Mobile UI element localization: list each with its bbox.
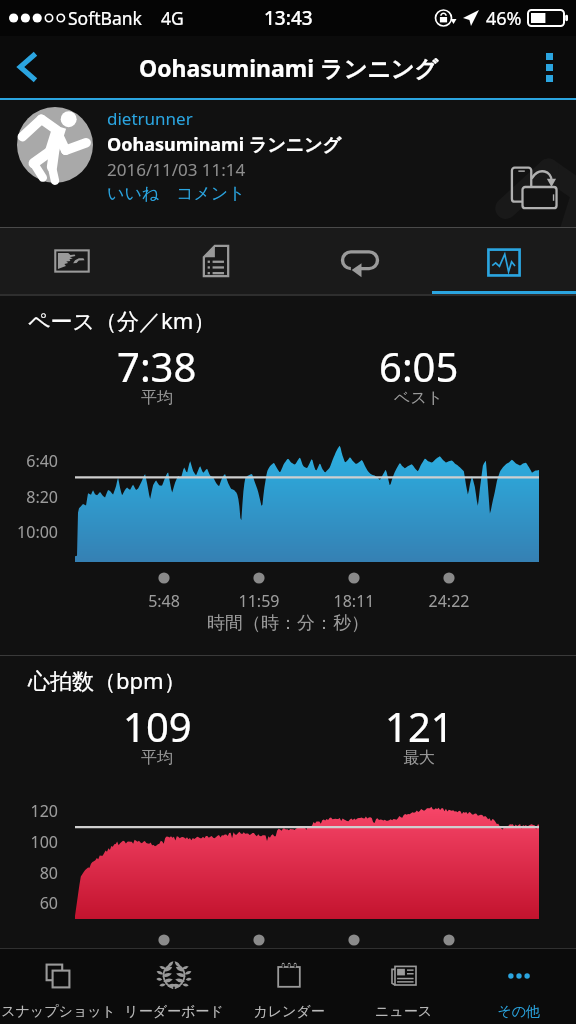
staticText: Oohasuminami ランニング	[139, 52, 438, 83]
staticText: 18:11	[314, 590, 394, 612]
staticText: 平均	[141, 748, 173, 768]
staticText: 平均	[141, 388, 173, 408]
staticText: ベスト	[394, 388, 444, 408]
button[interactable]: いいね	[107, 183, 160, 204]
staticText: dietrunner	[107, 107, 193, 130]
staticText: 100	[0, 831, 58, 853]
button[interactable]: Details	[144, 228, 288, 294]
staticText: 8:20	[0, 486, 58, 508]
staticText: 4G	[161, 6, 184, 30]
button[interactable]: カレンダー	[231, 949, 346, 1024]
staticText: カレンダー	[253, 1003, 325, 1021]
staticText: その他	[497, 1003, 540, 1021]
staticText: SoftBank	[68, 6, 142, 30]
staticText: 6:40	[0, 450, 58, 472]
staticText: 121	[385, 699, 454, 753]
staticText: 6:05	[379, 339, 459, 393]
button[interactable]: Rotate device	[506, 159, 562, 215]
staticText: 60	[0, 892, 58, 914]
staticText: 13:43	[264, 5, 313, 31]
staticText: 109	[123, 699, 192, 753]
button[interactable]: Map	[0, 228, 144, 294]
staticText: 80	[0, 862, 58, 884]
button[interactable]: ニュース	[346, 949, 461, 1024]
staticText: 時間（時：分：秒）	[0, 612, 576, 635]
button[interactable]: その他	[461, 949, 576, 1024]
button[interactable]: リーダーボード	[116, 949, 231, 1024]
staticText: Oohasuminami ランニング	[107, 132, 341, 157]
button[interactable]: Back	[0, 36, 54, 98]
staticText: スナップショット	[1, 1003, 116, 1021]
button[interactable]: More options	[522, 36, 576, 98]
button[interactable]: コメント	[176, 183, 246, 204]
staticText: ペース（分／km）	[28, 305, 216, 335]
staticText: 24:22	[409, 590, 489, 612]
staticText: ニュース	[375, 1003, 432, 1021]
staticText: 11:59	[219, 590, 299, 612]
staticText: 7:38	[117, 339, 197, 393]
staticText: 46%	[486, 6, 522, 31]
button[interactable]: Laps	[288, 228, 432, 294]
staticText: 心拍数（bpm）	[28, 665, 186, 695]
staticText: リーダーボード	[124, 1003, 224, 1021]
staticText: 最大	[403, 748, 435, 768]
staticText: 10:00	[0, 521, 58, 543]
button[interactable]: Charts	[432, 228, 576, 294]
staticText: 2016/11/03 11:14	[107, 158, 246, 181]
button[interactable]: スナップショット	[0, 949, 116, 1024]
staticText: 5:48	[124, 590, 204, 612]
staticText: 120	[0, 800, 58, 822]
